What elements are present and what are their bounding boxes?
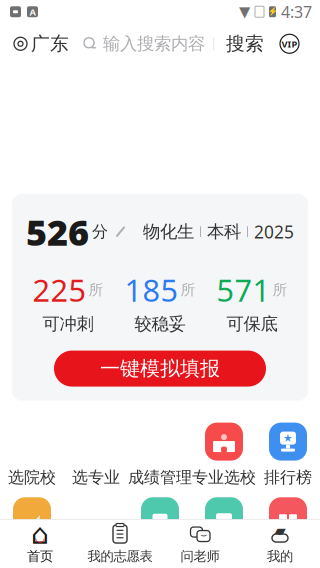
- button[interactable]: 571: [206, 270, 298, 335]
- staticText: ◡: [35, 530, 44, 544]
- button[interactable]: 我的志愿表: [80, 520, 160, 568]
- button[interactable]: 输入搜索内容: [73, 27, 213, 60]
- staticText: 2025: [254, 220, 294, 243]
- staticText: 排行榜: [264, 468, 312, 487]
- button[interactable]: 一键模拟填报: [54, 351, 266, 387]
- staticText: 选院校: [8, 468, 56, 487]
- button[interactable]: ⌂: [0, 520, 80, 568]
- staticText: ▰: [274, 522, 285, 538]
- staticText: ★: [283, 432, 293, 444]
- staticText: 185: [124, 270, 178, 310]
- button[interactable]: 快捷入口: [0, 497, 64, 519]
- button[interactable]: ▰: [240, 520, 320, 568]
- staticText: 可保底: [226, 313, 277, 335]
- staticText: 选专业: [72, 468, 120, 487]
- staticText: ⚡: [267, 7, 277, 16]
- staticText: 4:37: [281, 1, 312, 22]
- staticText: ▼: [239, 3, 250, 20]
- staticText: 广东: [31, 32, 69, 55]
- staticText: 所: [180, 281, 195, 299]
- staticText: 分: [92, 222, 108, 241]
- staticText: 我的: [267, 548, 293, 564]
- button[interactable]: ★: [256, 419, 320, 491]
- button[interactable]: 物化生: [143, 220, 294, 243]
- button[interactable]: 185: [114, 270, 206, 335]
- staticText: ⌂: [31, 518, 49, 550]
- staticText: 所: [272, 281, 287, 299]
- staticText: 本科: [207, 221, 241, 242]
- staticText: ◢: [24, 510, 39, 533]
- staticText: 问老师: [180, 548, 219, 564]
- button[interactable]: 专业选校: [192, 419, 256, 491]
- button[interactable]: ⌣: [160, 520, 240, 568]
- staticText: 专业选校: [192, 468, 256, 487]
- button[interactable]: VIP 会员: [276, 30, 303, 57]
- staticText: 搜索: [226, 32, 264, 55]
- button[interactable]: 225: [22, 270, 114, 335]
- staticText: 一键模拟填报: [100, 356, 220, 381]
- button[interactable]: 快捷入口: [192, 497, 256, 519]
- staticText: VIP: [281, 38, 297, 50]
- staticText: ⌣: [200, 530, 207, 540]
- staticText: 较稳妥: [134, 313, 185, 335]
- button[interactable]: 搜索: [214, 26, 276, 61]
- staticText: 成绩管理: [128, 468, 192, 487]
- staticText: 可冲刺: [42, 313, 93, 335]
- button[interactable]: 广东: [10, 26, 73, 61]
- staticText: 首页: [27, 548, 53, 564]
- button[interactable]: 成绩管理: [128, 419, 192, 491]
- button[interactable]: 选专业: [64, 419, 128, 491]
- staticText: 526: [26, 208, 89, 256]
- staticText: 225: [32, 270, 86, 310]
- staticText: A: [29, 6, 35, 18]
- staticText: 物化生: [143, 221, 194, 242]
- staticText: 所: [88, 281, 103, 299]
- button[interactable]: 快捷入口: [256, 497, 320, 519]
- button[interactable]: 编辑分数: [26, 208, 127, 256]
- staticText: 571: [216, 270, 270, 310]
- button[interactable]: 快捷入口: [128, 497, 192, 519]
- staticText: 我的志愿表: [87, 548, 152, 564]
- button[interactable]: 选院校: [0, 419, 64, 491]
- staticText: 输入搜索内容: [103, 33, 205, 54]
